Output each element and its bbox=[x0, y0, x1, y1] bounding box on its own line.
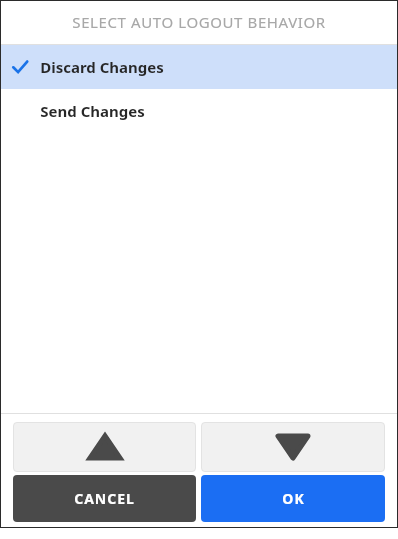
staticText: CANCEL bbox=[74, 489, 135, 508]
button[interactable]: Scroll up bbox=[13, 422, 196, 472]
button[interactable]: OK bbox=[201, 475, 385, 522]
staticText: Send Changes bbox=[40, 101, 145, 121]
staticText: SELECT AUTO LOGOUT BEHAVIOR bbox=[72, 12, 326, 32]
button[interactable]: Scroll down bbox=[201, 422, 385, 472]
button[interactable]: Send Changes bbox=[0, 89, 398, 133]
staticText: OK bbox=[282, 489, 305, 508]
staticText: Discard Changes bbox=[40, 57, 164, 77]
button[interactable]: CANCEL bbox=[13, 475, 196, 522]
button[interactable]: Discard Changes bbox=[0, 45, 398, 89]
